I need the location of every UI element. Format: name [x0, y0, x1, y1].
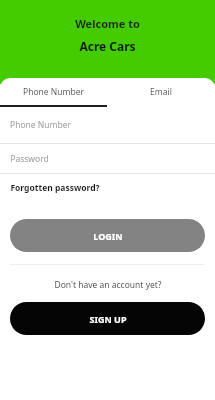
- staticText: Don't have an account yet?: [54, 279, 162, 291]
- staticText: Welcome to: [75, 16, 140, 31]
- button[interactable]: Phone Number: [0, 78, 107, 105]
- staticText: Forgotten password?: [10, 182, 100, 194]
- staticText: Password: [10, 153, 49, 165]
- button[interactable]: LOGIN: [10, 219, 205, 252]
- button[interactable]: Password: [0, 144, 215, 173]
- staticText: LOGIN: [93, 230, 123, 242]
- button[interactable]: Sign up: [10, 302, 205, 335]
- staticText: Phone Number: [10, 119, 71, 131]
- staticText: Acre Cars: [79, 38, 136, 54]
- staticText: Phone Number: [23, 86, 84, 98]
- staticText: SIGN UP: [89, 313, 127, 325]
- button[interactable]: Email: [107, 78, 215, 105]
- button[interactable]: Phone Number: [0, 107, 215, 143]
- button[interactable]: Forgotten password?: [0, 174, 110, 198]
- staticText: Email: [150, 86, 172, 98]
